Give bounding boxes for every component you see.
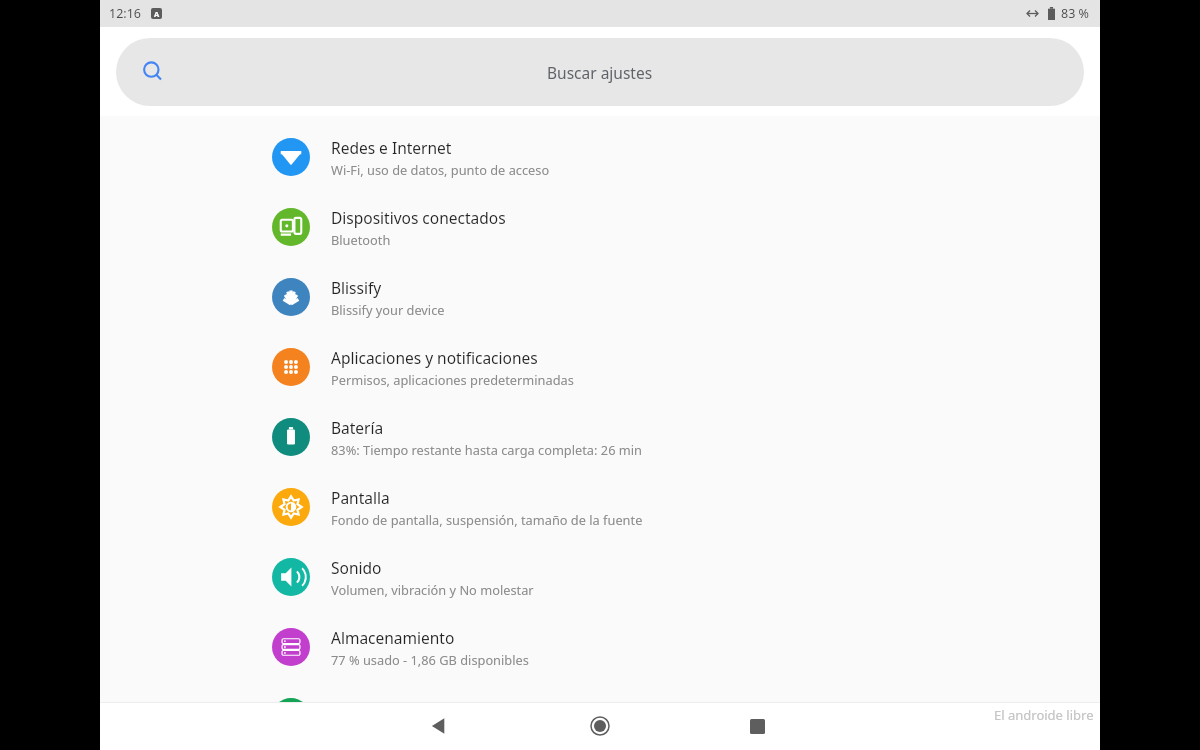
- staticText: Blissify your device: [331, 301, 445, 318]
- staticText: 77 % usado - 1,86 GB disponibles: [331, 651, 529, 668]
- staticText: Batería: [331, 417, 384, 438]
- button[interactable]: Blissify: [100, 262, 1100, 332]
- button[interactable]: Seguridad y ubicación: [100, 682, 1100, 750]
- staticText: Pantalla: [331, 487, 390, 508]
- staticText: Dispositivos conectados: [331, 207, 506, 228]
- staticText: 83 %: [1061, 5, 1089, 22]
- staticText: Buscar ajustes: [547, 62, 653, 83]
- staticText: Sonido: [331, 557, 382, 578]
- button[interactable]: Batería: [100, 402, 1100, 472]
- button[interactable]: Recent apps: [734, 703, 780, 749]
- button[interactable]: Pantalla: [100, 472, 1100, 542]
- staticText: Blissify: [331, 277, 382, 298]
- staticText: A: [154, 9, 160, 19]
- staticText: Permisos, aplicaciones predeterminadas: [331, 371, 574, 388]
- staticText: Almacenamiento: [331, 627, 455, 648]
- button[interactable]: Redes e Internet: [100, 122, 1100, 192]
- staticText: El androide libre: [994, 706, 1094, 724]
- staticText: 12:16: [109, 5, 141, 22]
- button[interactable]: Dispositivos conectados: [100, 192, 1100, 262]
- button[interactable]: Buscar ajustes: [116, 38, 1084, 106]
- button[interactable]: Back: [417, 703, 463, 749]
- button[interactable]: Home: [577, 703, 623, 749]
- button[interactable]: Sonido: [100, 542, 1100, 612]
- staticText: Seguridad y ubicación: [331, 707, 492, 728]
- staticText: Fondo de pantalla, suspensión, tamaño de…: [331, 511, 643, 528]
- staticText: Redes e Internet: [331, 137, 452, 158]
- button[interactable]: Aplicaciones y notificaciones: [100, 332, 1100, 402]
- staticText: Wi-Fi, uso de datos, punto de acceso: [331, 161, 550, 178]
- staticText: 83%: Tiempo restante hasta carga complet…: [331, 441, 642, 458]
- staticText: Volumen, vibración y No molestar: [331, 581, 534, 598]
- other: Search: [141, 60, 165, 84]
- staticText: Aplicaciones y notificaciones: [331, 347, 538, 368]
- staticText: Bluetooth: [331, 231, 391, 248]
- button[interactable]: Almacenamiento: [100, 612, 1100, 682]
